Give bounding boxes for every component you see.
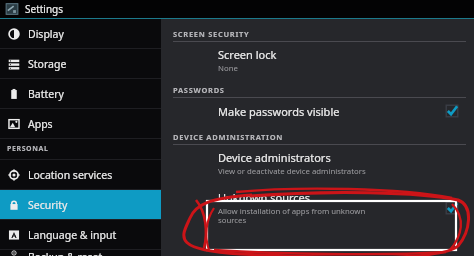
staticText: Language & input: [28, 228, 117, 242]
staticText: SCREEN SECURITY: [173, 29, 250, 39]
button[interactable]: Toggle setting: [444, 103, 460, 119]
staticText: Device administrators: [218, 150, 331, 165]
staticText: Make passwords visible: [218, 104, 340, 119]
staticText: Apps: [28, 117, 53, 131]
button[interactable]: Make passwords visible: [167, 98, 474, 124]
button[interactable]: Backup & reset: [0, 250, 161, 256]
button[interactable]: Device administrators: [167, 145, 474, 182]
button[interactable]: Security: [0, 190, 161, 219]
button[interactable]: Display: [0, 19, 161, 48]
staticText: Battery: [28, 87, 64, 101]
staticText: Allow installation of apps from unknown …: [218, 206, 366, 226]
staticText: PASSWORDS: [173, 85, 225, 95]
staticText: None: [218, 63, 238, 74]
staticText: PERSONAL: [7, 144, 49, 154]
staticText: Screen lock: [218, 47, 277, 62]
staticText: Unknown sources: [218, 190, 311, 205]
button[interactable]: Unknown sources: [167, 185, 474, 231]
staticText: View or deactivate device administrators: [218, 166, 366, 177]
button[interactable]: Language & input: [0, 220, 161, 249]
staticText: Settings: [25, 2, 64, 16]
staticText: Backup & reset: [28, 250, 103, 256]
staticText: DEVICE ADMINISTRATION: [173, 132, 284, 142]
button[interactable]: Location services: [0, 160, 161, 189]
staticText: Storage: [28, 57, 67, 71]
button[interactable]: Apps: [0, 109, 161, 138]
button[interactable]: Storage: [0, 49, 161, 78]
staticText: Display: [28, 27, 64, 41]
button[interactable]: Toggle setting: [444, 200, 460, 216]
button[interactable]: Screen lock: [167, 42, 474, 79]
staticText: Location services: [28, 168, 113, 182]
button[interactable]: Battery: [0, 79, 161, 108]
staticText: Security: [28, 198, 68, 212]
